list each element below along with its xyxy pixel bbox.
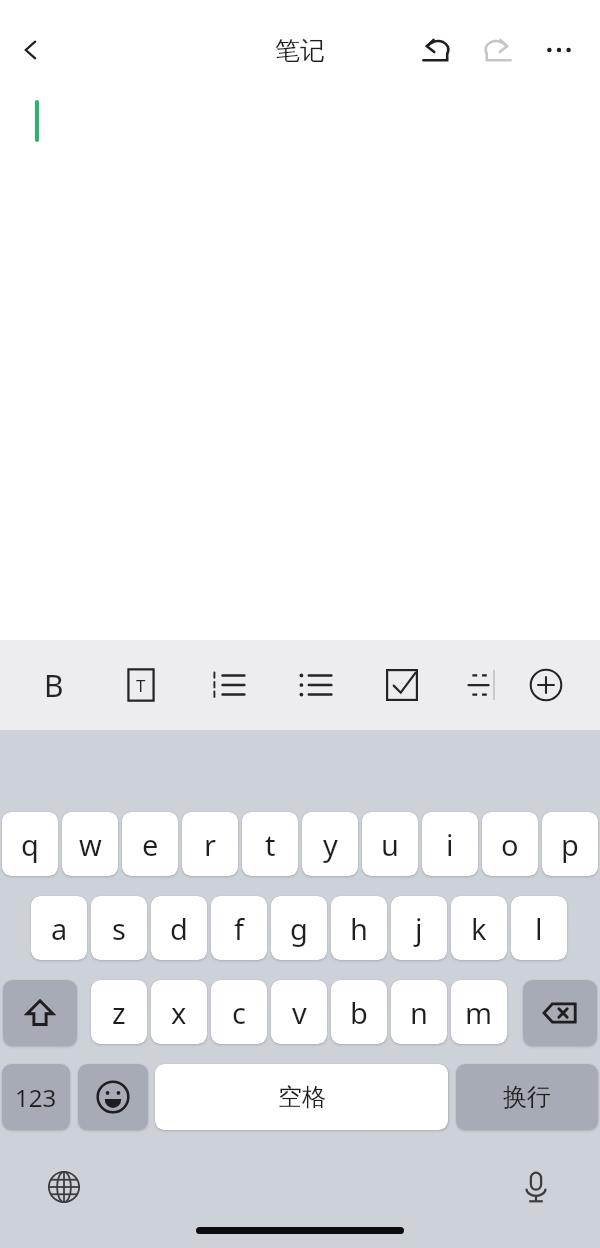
button[interactable]: q xyxy=(2,812,58,876)
staticText: w xyxy=(79,825,102,864)
button[interactable]: m xyxy=(451,980,507,1044)
button[interactable]: r xyxy=(182,812,238,876)
button[interactable]: Bulleted list xyxy=(288,658,342,712)
button[interactable]: Bold xyxy=(27,658,81,712)
button[interactable]: p xyxy=(542,812,598,876)
button[interactable]: 空格 xyxy=(155,1064,448,1130)
staticText: u xyxy=(381,825,399,864)
button[interactable]: n xyxy=(391,980,447,1044)
button[interactable]: 换行 xyxy=(456,1064,598,1130)
button[interactable]: Checklist xyxy=(375,658,429,712)
button[interactable]: k xyxy=(451,896,507,960)
button[interactable]: Backspace xyxy=(523,980,597,1046)
staticText: k xyxy=(471,909,487,948)
staticText: B xyxy=(44,665,64,706)
button[interactable]: z xyxy=(91,980,147,1044)
staticText: s xyxy=(112,909,126,948)
staticText: l xyxy=(535,909,543,948)
staticText: f xyxy=(234,909,244,948)
staticText: t xyxy=(265,825,276,864)
button[interactable]: Insert xyxy=(519,658,573,712)
staticText: v xyxy=(292,993,307,1032)
button[interactable]: Text style xyxy=(114,658,168,712)
button[interactable]: l xyxy=(511,896,567,960)
button[interactable]: o xyxy=(482,812,538,876)
button[interactable]: v xyxy=(271,980,327,1044)
staticText: 123 xyxy=(15,1081,57,1114)
staticText: x xyxy=(171,993,187,1032)
button[interactable]: y xyxy=(302,812,358,876)
button[interactable]: g xyxy=(271,896,327,960)
staticText: q xyxy=(21,825,39,864)
staticText: a xyxy=(51,909,68,948)
staticText: 换行 xyxy=(503,1082,551,1112)
staticText: i xyxy=(446,825,454,864)
button[interactable]: x xyxy=(151,980,207,1044)
staticText: c xyxy=(232,993,246,1032)
button[interactable]: c xyxy=(211,980,267,1044)
button[interactable]: Undo xyxy=(412,25,462,75)
staticText: m xyxy=(465,993,493,1032)
staticText: j xyxy=(415,909,423,948)
staticText: p xyxy=(561,825,579,864)
button[interactable]: h xyxy=(331,896,387,960)
staticText: e xyxy=(142,825,159,864)
staticText: T xyxy=(136,674,146,697)
button[interactable]: e xyxy=(122,812,178,876)
staticText: z xyxy=(112,993,126,1032)
staticText: n xyxy=(410,993,428,1032)
button[interactable]: d xyxy=(151,896,207,960)
button[interactable]: j xyxy=(391,896,447,960)
button[interactable]: f xyxy=(211,896,267,960)
staticText: 空格 xyxy=(278,1082,326,1112)
button[interactable]: u xyxy=(362,812,418,876)
button[interactable]: Insert divider xyxy=(455,658,509,712)
button[interactable]: 123 xyxy=(2,1064,70,1130)
staticText: r xyxy=(204,825,216,864)
button[interactable]: Change language xyxy=(39,1162,89,1212)
staticText: 笔记 xyxy=(275,35,325,66)
button[interactable]: Shift xyxy=(3,980,77,1046)
staticText: g xyxy=(290,909,308,948)
staticText: y xyxy=(323,825,338,864)
button[interactable]: t xyxy=(242,812,298,876)
button[interactable]: Redo xyxy=(472,25,522,75)
button[interactable]: Numbered list xyxy=(201,658,255,712)
staticText: d xyxy=(170,909,188,948)
staticText: o xyxy=(501,825,519,864)
staticText: b xyxy=(350,993,368,1032)
button[interactable]: a xyxy=(31,896,87,960)
button[interactable]: b xyxy=(331,980,387,1044)
button[interactable]: i xyxy=(422,812,478,876)
button[interactable]: s xyxy=(91,896,147,960)
button[interactable]: w xyxy=(62,812,118,876)
staticText: h xyxy=(350,909,368,948)
button[interactable]: More options xyxy=(534,25,584,75)
button[interactable]: Voice input xyxy=(511,1162,561,1212)
button[interactable]: Emoji xyxy=(78,1064,148,1130)
button[interactable]: Back xyxy=(6,25,56,75)
